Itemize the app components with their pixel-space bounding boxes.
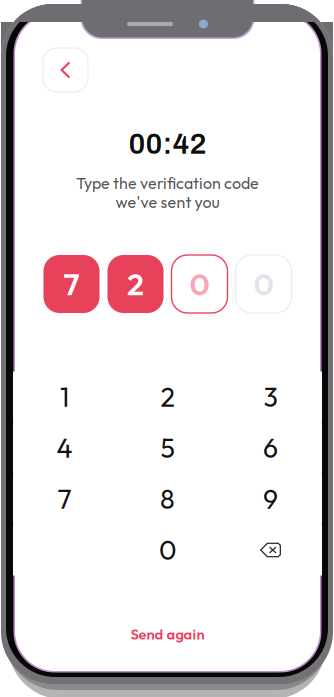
staticText: 0 [253,265,273,303]
staticText: Type the verification code [76,173,259,193]
staticText: 6 [263,431,278,465]
staticText: 2 [127,265,144,303]
button[interactable]: 0 [116,524,219,575]
button[interactable]: 4 [13,422,116,473]
button[interactable]: Back [43,48,88,92]
staticText: 5 [160,431,174,465]
button[interactable]: 2 [116,371,219,422]
button[interactable]: Delete [219,524,322,575]
staticText: 3 [263,380,277,414]
staticText: 7 [57,482,71,516]
button[interactable]: Send again [118,617,216,651]
button[interactable]: 9 [219,473,322,524]
staticText: 7 [63,265,79,303]
staticText: we've sent you [115,192,219,212]
staticText: 4 [56,431,72,465]
staticText: 00:42 [128,128,206,160]
staticText: 1 [60,380,69,414]
button[interactable]: 1 [13,371,116,422]
staticText: 8 [160,482,175,516]
staticText: 0 [159,533,176,567]
staticText: Send again [130,625,204,643]
staticText: 9 [263,482,278,516]
button[interactable]: 8 [116,473,219,524]
staticText: 0 [189,265,209,303]
button[interactable]: 6 [219,422,322,473]
button[interactable]: 3 [219,371,322,422]
button[interactable]: 5 [116,422,219,473]
button[interactable]: 7 [13,473,116,524]
staticText: 2 [160,380,174,414]
